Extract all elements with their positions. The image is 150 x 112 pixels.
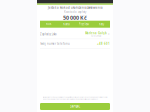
- staticText: Przelew: [79, 22, 89, 26]
- staticText: Marlena Gołąb: [85, 31, 107, 35]
- staticText: marlena@mail.pl: [91, 35, 101, 37]
- staticText: >: [108, 32, 110, 36]
- staticText: ZAPŁAĆ: [69, 105, 80, 108]
- button[interactable]: BLIK: [40, 21, 57, 28]
- staticText: Zapłacisz jako: [40, 32, 57, 36]
- staticText: Karta: [63, 22, 69, 26]
- staticText: Raty: [99, 22, 104, 26]
- staticText: Jesteś o krok od ukończenia zamówienia: [48, 6, 102, 9]
- staticText: Twój numer telefonu: [40, 42, 70, 45]
- staticText: Klikając w przycisk akceptujesz regulami…: [42, 96, 107, 100]
- button[interactable]: Przelew: [75, 21, 92, 28]
- staticText: 50 000 Kč: [63, 14, 87, 21]
- staticText: +48 601: [97, 42, 110, 45]
- button[interactable]: ZAPŁAĆ: [40, 103, 110, 110]
- button[interactable]: Karta: [57, 21, 75, 28]
- staticText: BLIK: [46, 22, 52, 26]
- button[interactable]: Raty: [92, 21, 110, 28]
- staticText: Kwota do zapłaty: [64, 10, 86, 14]
